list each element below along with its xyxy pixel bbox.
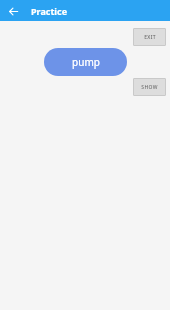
button[interactable]: SHOW (133, 78, 166, 96)
staticText: pump (72, 55, 100, 69)
button[interactable]: pump (44, 48, 127, 76)
button[interactable]: Back (4, 2, 22, 20)
button[interactable]: EXIT (133, 28, 166, 46)
staticText: Practice (31, 5, 68, 17)
staticText: EXIT (144, 34, 156, 41)
staticText: SHOW (141, 84, 158, 91)
